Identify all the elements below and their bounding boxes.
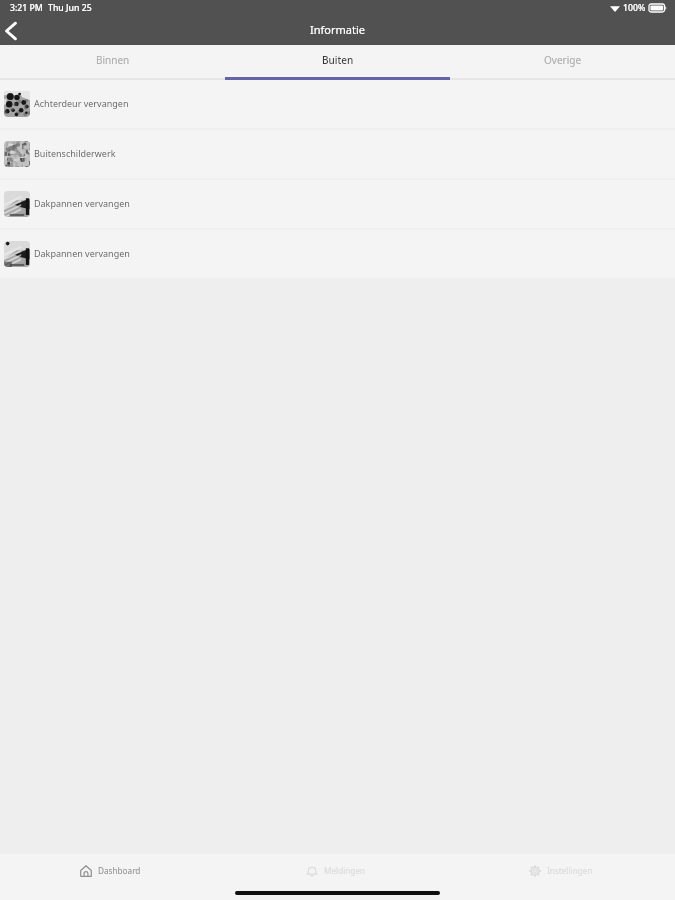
staticText: Dakpannen vervangen [34, 247, 130, 259]
staticText: Meldingen [324, 865, 366, 876]
button[interactable]: Dakpannen vervangen [0, 180, 675, 228]
staticText: 3:21 PM [10, 2, 43, 14]
button[interactable]: Dakpannen vervangen [0, 230, 675, 278]
button[interactable]: Achterdeur vervangen [0, 80, 675, 128]
staticText: Dakpannen vervangen [34, 197, 130, 209]
button[interactable]: Buitenschilderwerk [0, 130, 675, 178]
staticText: Overige [544, 53, 582, 67]
button[interactable]: Binnen [0, 45, 225, 80]
staticText: Buiten [322, 53, 354, 67]
button[interactable]: Buiten [225, 45, 450, 80]
button[interactable]: Back [0, 18, 26, 44]
staticText: Dashboard [98, 865, 141, 876]
button[interactable]: Instellingen [450, 854, 675, 887]
staticText: Thu Jun 25 [48, 2, 92, 14]
staticText: Informatie [310, 22, 365, 37]
staticText: Instellingen [547, 865, 593, 876]
staticText: Binnen [96, 53, 130, 67]
staticText: Buitenschilderwerk [34, 147, 116, 159]
button[interactable]: Dashboard [0, 854, 225, 887]
staticText: 100% [623, 2, 646, 14]
button[interactable]: Overige [450, 45, 675, 80]
staticText: Achterdeur vervangen [34, 97, 129, 109]
